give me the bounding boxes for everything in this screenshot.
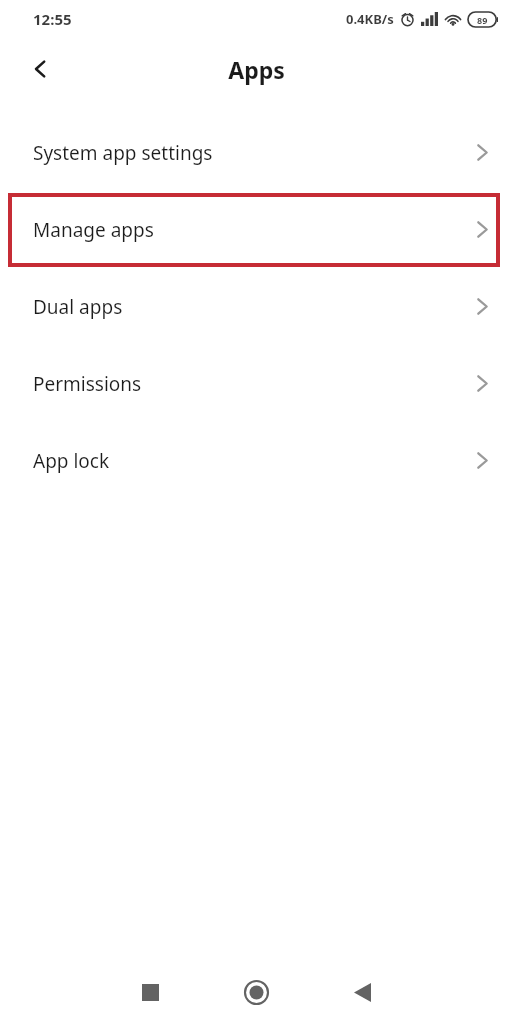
button[interactable]: Back [338,968,386,1016]
staticText: Manage apps [33,217,154,243]
button[interactable]: Recent apps [126,968,174,1016]
button[interactable]: System app settings [0,114,512,191]
button[interactable]: App lock [0,422,512,499]
button[interactable]: Manage apps [0,191,512,268]
staticText: Apps [228,54,285,85]
staticText: 0.4KB/s [346,10,394,28]
staticText: Dual apps [33,294,123,320]
staticText: System app settings [33,140,213,166]
staticText: 89 [477,14,488,26]
button[interactable]: Permissions [0,345,512,422]
button[interactable]: Back [18,46,64,92]
staticText: Permissions [33,371,142,397]
button[interactable]: Home [232,968,280,1016]
staticText: App lock [33,448,110,474]
staticText: 12:55 [33,9,72,29]
button[interactable]: Dual apps [0,268,512,345]
